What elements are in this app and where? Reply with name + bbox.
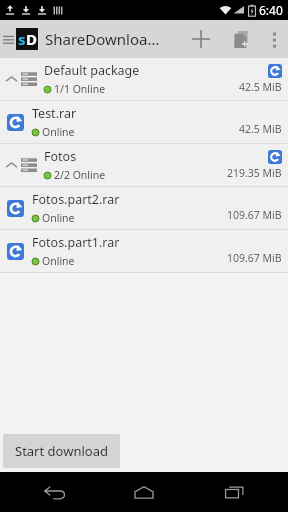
staticText: Start download: [15, 442, 108, 460]
button[interactable]: Fotos.part1.rar: [0, 230, 288, 272]
staticText: 42.5 MiB: [239, 80, 282, 94]
staticText: Fotos.part1.rar: [32, 234, 120, 251]
button[interactable]: Default package: [0, 58, 288, 100]
button[interactable]: More options: [260, 20, 288, 58]
staticText: ShareDownloa…: [45, 29, 160, 49]
button[interactable]: Recent apps: [199, 472, 269, 512]
staticText: Default package: [44, 62, 140, 79]
button[interactable]: Back: [20, 472, 90, 512]
staticText: Test.rar: [32, 105, 77, 122]
button[interactable]: Test.rar: [0, 101, 288, 143]
staticText: 2/2 Online: [54, 168, 106, 182]
staticText: 109.67 MiB: [227, 208, 282, 222]
staticText: 109.67 MiB: [227, 251, 282, 265]
staticText: Online: [42, 211, 75, 225]
staticText: s: [18, 29, 26, 49]
staticText: 42.5 MiB: [239, 122, 282, 136]
button[interactable]: Start download: [3, 434, 120, 468]
button[interactable]: Fotos.part2.rar: [0, 187, 288, 229]
button[interactable]: Add: [180, 20, 222, 58]
staticText: D: [26, 29, 37, 49]
button[interactable]: New package: [222, 20, 260, 58]
staticText: 1/1 Online: [54, 82, 106, 96]
button[interactable]: Home: [109, 472, 179, 512]
staticText: 219.35 MiB: [227, 166, 282, 180]
button[interactable]: Fotos: [0, 144, 288, 186]
staticText: Fotos.part2.rar: [32, 191, 120, 208]
staticText: Fotos: [44, 148, 77, 165]
staticText: Online: [42, 125, 75, 139]
staticText: Online: [42, 254, 75, 268]
staticText: 6:40: [259, 2, 283, 18]
button[interactable]: Open navigation drawer: [0, 20, 16, 58]
